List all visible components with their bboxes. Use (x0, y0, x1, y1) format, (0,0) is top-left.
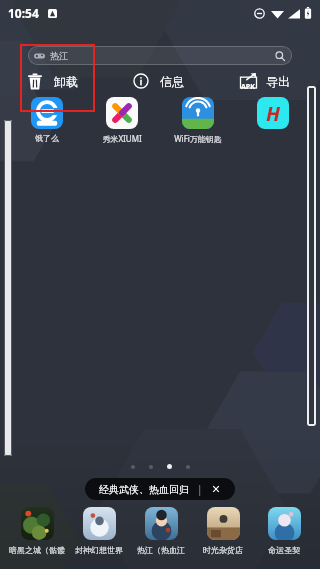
staticText: 命运圣契 (268, 545, 300, 555)
button[interactable]: 热江（热血江 (130, 507, 192, 555)
button[interactable]: 经典武侠、热血回归 (99, 482, 221, 496)
staticText: | (197, 482, 203, 496)
button[interactable]: 封神幻想世界 (68, 507, 130, 555)
staticText: 饿了么 (35, 133, 59, 143)
staticText: APK (241, 82, 255, 92)
staticText: 经典武侠、热血回归 (99, 483, 189, 496)
staticText: 秀米XIUMI (102, 133, 142, 144)
button[interactable]: WiFi万能钥匙 (163, 97, 233, 144)
button[interactable]: 导出 (240, 68, 290, 94)
staticText: 暗黑之城（骷髅 (9, 545, 65, 555)
button[interactable]: 时光杂货店 (192, 507, 254, 555)
other: Close (211, 484, 221, 494)
button[interactable]: H (238, 97, 308, 133)
button[interactable]: 饿了么 (12, 97, 82, 143)
staticText: 信息 (160, 74, 184, 89)
staticText: 10:54 (8, 5, 39, 21)
button[interactable]: 卸载 (28, 68, 78, 94)
staticText: 封神幻想世界 (75, 545, 123, 555)
staticText: 时光杂货店 (203, 545, 243, 555)
staticText: WiFi万能钥匙 (174, 133, 222, 144)
button[interactable]: 信息 (133, 68, 184, 94)
staticText: 卸载 (54, 74, 78, 89)
staticText: 热江（热血江 (137, 545, 185, 555)
staticText: 导出 (266, 74, 290, 89)
staticText: H (266, 100, 281, 127)
staticText: 热江 (50, 50, 68, 61)
button[interactable]: 暗黑之城（骷髅 (6, 507, 68, 555)
button[interactable]: 命运圣契 (254, 507, 314, 555)
button[interactable]: 热江 (28, 46, 292, 65)
button[interactable]: 秀米XIUMI (87, 97, 157, 144)
